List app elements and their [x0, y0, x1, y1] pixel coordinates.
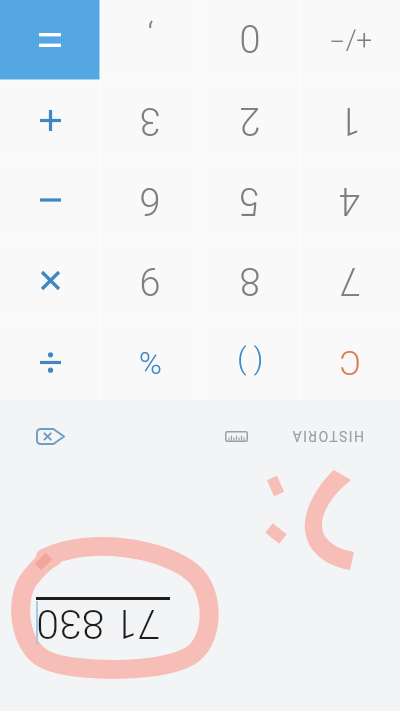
staticText: 7	[339, 258, 361, 303]
staticText: 5	[239, 178, 261, 223]
button[interactable]	[0, 240, 100, 320]
button[interactable]: 1	[300, 80, 400, 160]
button[interactable]: +/−	[300, 0, 400, 80]
staticText: 71 830	[36, 600, 160, 648]
staticText: C	[339, 343, 361, 382]
button[interactable]: HISTORIA	[284, 419, 370, 453]
staticText: 4	[339, 178, 361, 223]
staticText: 0	[239, 15, 261, 60]
button[interactable]	[0, 0, 100, 80]
button[interactable]: ( )	[200, 320, 300, 400]
staticText: 3	[139, 98, 161, 143]
staticText: +/−	[329, 24, 372, 57]
button[interactable]	[0, 160, 100, 240]
staticText: 9	[139, 258, 161, 303]
button[interactable]: 7	[300, 240, 400, 320]
button[interactable]: Backspace	[29, 419, 71, 453]
staticText: 1	[339, 98, 361, 143]
button[interactable]: 2	[200, 80, 300, 160]
button[interactable]	[0, 80, 100, 160]
button[interactable]: 4	[300, 160, 400, 240]
staticText: ,	[147, 17, 154, 57]
button[interactable]: ,	[100, 0, 200, 80]
button[interactable]: Unit converter	[218, 419, 254, 453]
staticText: 6	[139, 178, 161, 223]
button[interactable]: 6	[100, 160, 200, 240]
button[interactable]	[0, 320, 100, 400]
button[interactable]: 3	[100, 80, 200, 160]
staticText: ( )	[237, 345, 263, 379]
button[interactable]: 5	[200, 160, 300, 240]
button[interactable]: %	[100, 320, 200, 400]
staticText: 8	[239, 258, 261, 303]
button[interactable]: 8	[200, 240, 300, 320]
staticText: HISTORIA	[291, 428, 364, 444]
button[interactable]: 0	[200, 0, 300, 80]
staticText: 2	[239, 98, 261, 143]
staticText: %	[139, 345, 162, 381]
button[interactable]: 9	[100, 240, 200, 320]
button[interactable]: C	[300, 320, 400, 400]
